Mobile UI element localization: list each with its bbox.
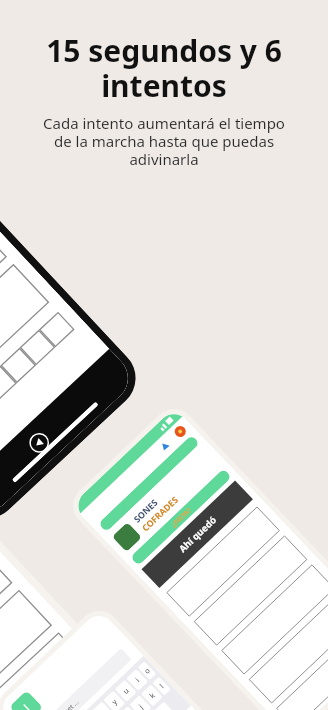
button[interactable] bbox=[249, 593, 328, 704]
button[interactable] bbox=[194, 535, 307, 646]
button[interactable] bbox=[0, 675, 126, 710]
button[interactable] bbox=[221, 564, 328, 675]
staticText: SONES bbox=[131, 496, 161, 525]
staticText: ¿PISTA? bbox=[169, 506, 193, 529]
button[interactable]: Ahí quedó bbox=[141, 480, 253, 588]
staticText: i bbox=[133, 675, 142, 684]
staticText: o bbox=[142, 665, 152, 676]
staticText: j bbox=[136, 702, 145, 710]
staticText: u bbox=[120, 685, 131, 696]
button[interactable] bbox=[0, 264, 49, 427]
button[interactable] bbox=[98, 435, 200, 532]
button[interactable] bbox=[0, 218, 7, 381]
staticText: 15 segundos y 6 intentos bbox=[18, 30, 310, 106]
staticText: Cada intento aumentará el tiempo de la m… bbox=[43, 113, 285, 170]
staticText: Ahí quedó bbox=[176, 514, 219, 555]
button[interactable] bbox=[276, 622, 328, 710]
button[interactable] bbox=[0, 590, 52, 710]
staticText: J bbox=[20, 700, 33, 710]
staticText: y bbox=[109, 696, 119, 707]
button[interactable] bbox=[0, 632, 92, 710]
button[interactable] bbox=[0, 547, 12, 707]
button[interactable]: J bbox=[9, 690, 43, 710]
button[interactable] bbox=[166, 506, 280, 617]
staticText: COFRADES bbox=[139, 494, 181, 534]
staticText: k bbox=[147, 690, 157, 700]
button[interactable]: ¿PISTA? bbox=[130, 468, 232, 566]
staticText: l bbox=[157, 681, 166, 690]
button[interactable]: Back bbox=[25, 428, 53, 457]
staticText: m bbox=[159, 706, 171, 710]
staticText: Could not get ... bbox=[37, 697, 80, 710]
